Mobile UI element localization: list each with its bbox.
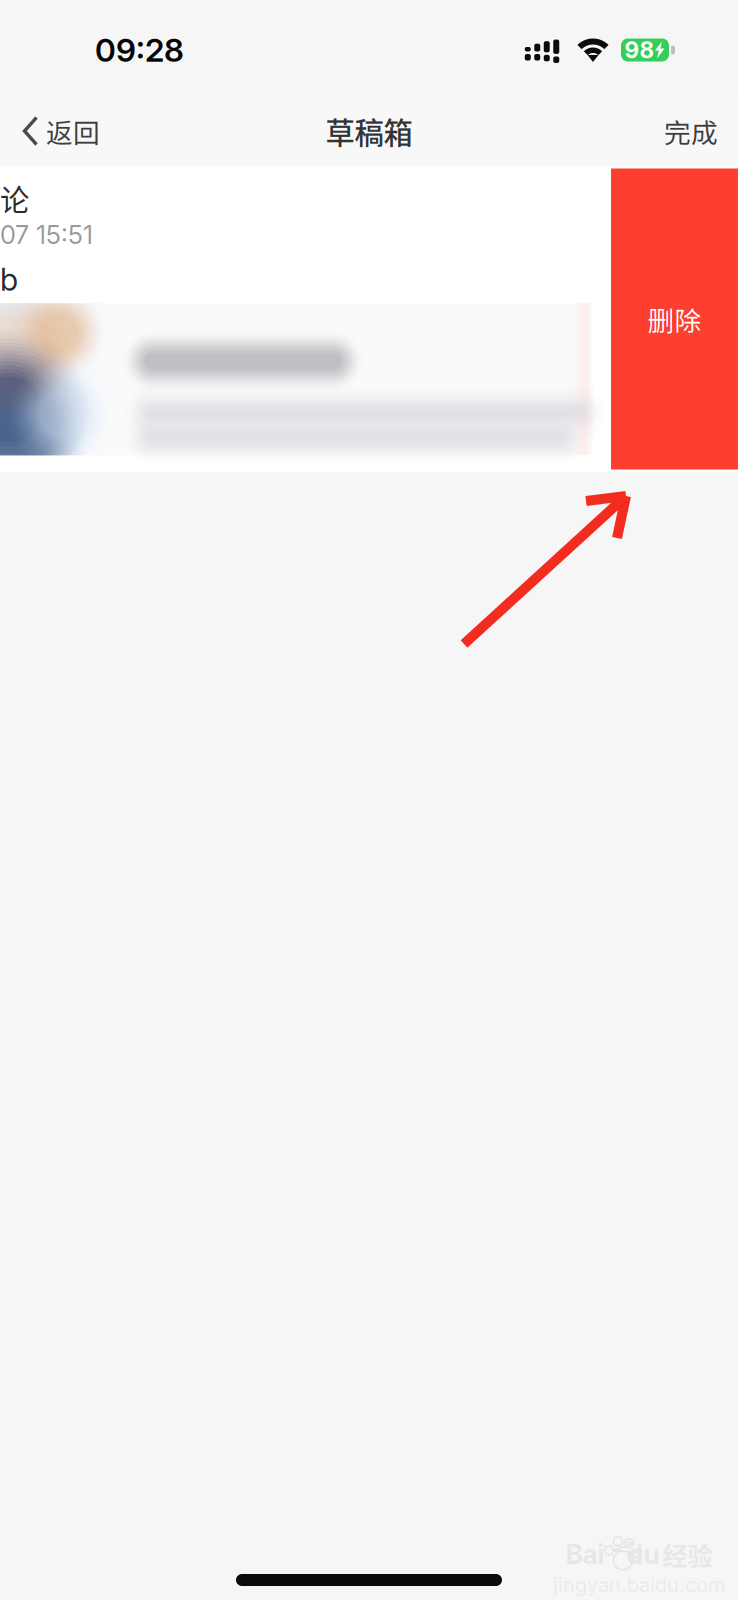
button[interactable]: 删除 xyxy=(611,168,738,469)
staticText: 经验 xyxy=(662,1536,712,1573)
button[interactable]: 论 xyxy=(0,166,593,472)
staticText: 返回 xyxy=(46,112,100,150)
staticText: jingyan.baidu.com xyxy=(553,1573,725,1597)
staticText: 草稿箱 xyxy=(325,110,412,152)
staticText: 完成 xyxy=(664,112,718,150)
staticText: b xyxy=(0,261,18,298)
staticText: du xyxy=(626,1538,659,1570)
staticText: Bai xyxy=(565,1538,604,1570)
staticText: 删除 xyxy=(647,300,701,338)
staticText: 07 15:51 xyxy=(0,219,93,250)
button[interactable]: 返回 xyxy=(0,96,118,166)
staticText: 98 xyxy=(624,36,654,64)
staticText: 09:28 xyxy=(95,31,184,69)
button[interactable]: 完成 xyxy=(646,96,738,166)
staticText: 论 xyxy=(0,177,29,219)
